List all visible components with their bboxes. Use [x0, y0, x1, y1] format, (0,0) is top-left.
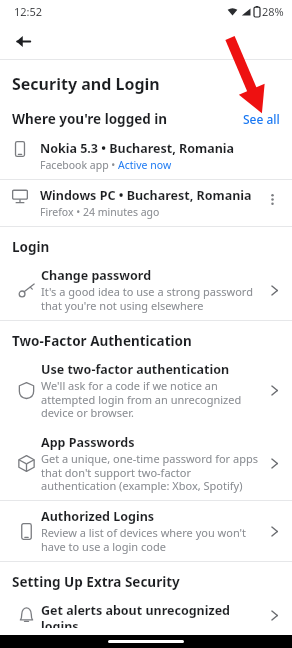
staticText: Get a unique, one-time password for apps…	[41, 451, 262, 493]
button[interactable]: More options	[260, 187, 284, 211]
button[interactable]: Change password	[0, 260, 292, 320]
staticText: Windows PC • Bucharest, Romania	[40, 187, 252, 204]
staticText: Authorized Logins	[41, 508, 155, 525]
staticText: Security and Login	[12, 73, 160, 95]
button[interactable]: Back	[8, 26, 38, 56]
staticText: Two-Factor Authentication	[12, 332, 192, 350]
staticText: 12:52	[14, 4, 43, 19]
staticText: Get alerts about unrecognized logins	[41, 602, 262, 628]
button[interactable]: Get alerts about unrecognized logins	[0, 595, 292, 635]
button[interactable]: See all	[241, 109, 282, 129]
staticText: It's a good idea to use a strong passwor…	[41, 284, 262, 313]
staticText: Setting Up Extra Security	[12, 573, 180, 591]
staticText: App Passwords	[41, 434, 135, 451]
button[interactable]: Windows PC • Bucharest, Romania	[0, 180, 292, 226]
button[interactable]: Nokia 5.3 • Bucharest, Romania	[0, 133, 292, 179]
staticText: Facebook app • Active now	[40, 158, 172, 172]
staticText: Review a list of devices where you won't…	[41, 525, 262, 554]
button[interactable]: App Passwords	[0, 427, 292, 500]
staticText: Where you're logged in	[12, 110, 168, 128]
staticText: See all	[243, 111, 280, 127]
staticText: Login	[12, 238, 50, 256]
staticText: Use two-factor authentication	[41, 361, 230, 378]
staticText: 28%	[262, 4, 284, 19]
button[interactable]: Use two-factor authentication	[0, 354, 292, 427]
staticText: Firefox • 24 minutes ago	[40, 205, 160, 219]
button[interactable]: Authorized Logins	[0, 501, 292, 561]
staticText: Nokia 5.3 • Bucharest, Romania	[40, 140, 235, 157]
staticText: We'll ask for a code if we notice an att…	[41, 378, 262, 420]
staticText: Change password	[41, 267, 152, 284]
